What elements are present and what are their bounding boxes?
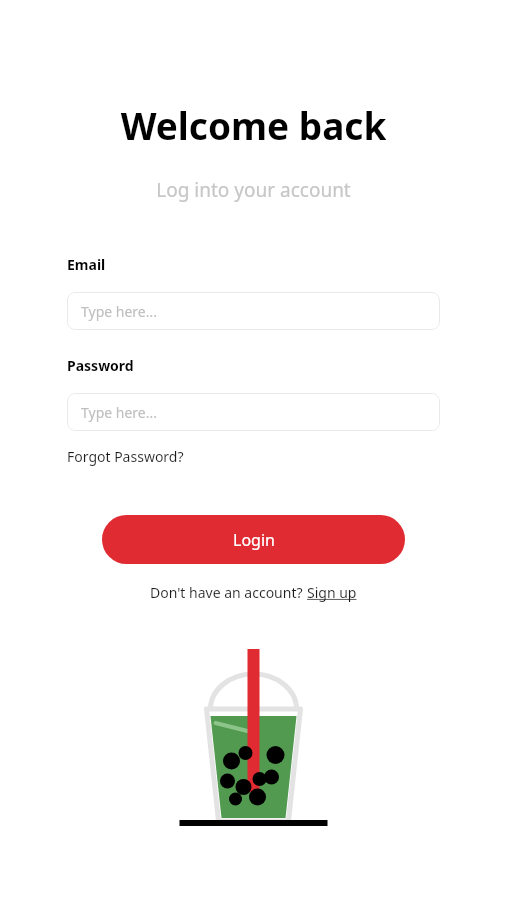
staticText: Type here... (81, 403, 157, 422)
staticText: Sign up (307, 583, 357, 602)
staticText: Forgot Password? (67, 447, 184, 466)
button[interactable]: Sign up (307, 583, 357, 602)
button[interactable]: Password input (67, 393, 440, 431)
other: Bubble tea illustration (0, 637, 507, 832)
staticText: Welcome back (0, 100, 507, 150)
staticText: Don't have an account? (150, 583, 307, 602)
staticText: Log into your account (0, 177, 507, 203)
staticText: Password (67, 356, 134, 375)
button[interactable]: Login (102, 515, 405, 564)
staticText: Email (67, 255, 106, 274)
button[interactable]: Email input (67, 292, 440, 330)
staticText: Type here... (81, 302, 157, 321)
button[interactable]: Forgot Password? (67, 445, 184, 468)
staticText: Login (233, 529, 275, 551)
